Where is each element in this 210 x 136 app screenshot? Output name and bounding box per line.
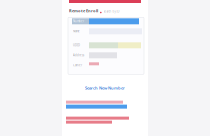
staticText: Name (73, 29, 80, 33)
staticText: Number (73, 19, 84, 23)
staticText: Search by ID (104, 10, 120, 13)
staticText: Carrier (73, 63, 82, 67)
staticText: Address (73, 53, 84, 57)
staticText: Search New Number (85, 85, 125, 91)
button[interactable]: Search New Number (62, 81, 148, 95)
staticText: UDID (73, 43, 80, 47)
staticText: Remote Enroll (69, 8, 98, 13)
